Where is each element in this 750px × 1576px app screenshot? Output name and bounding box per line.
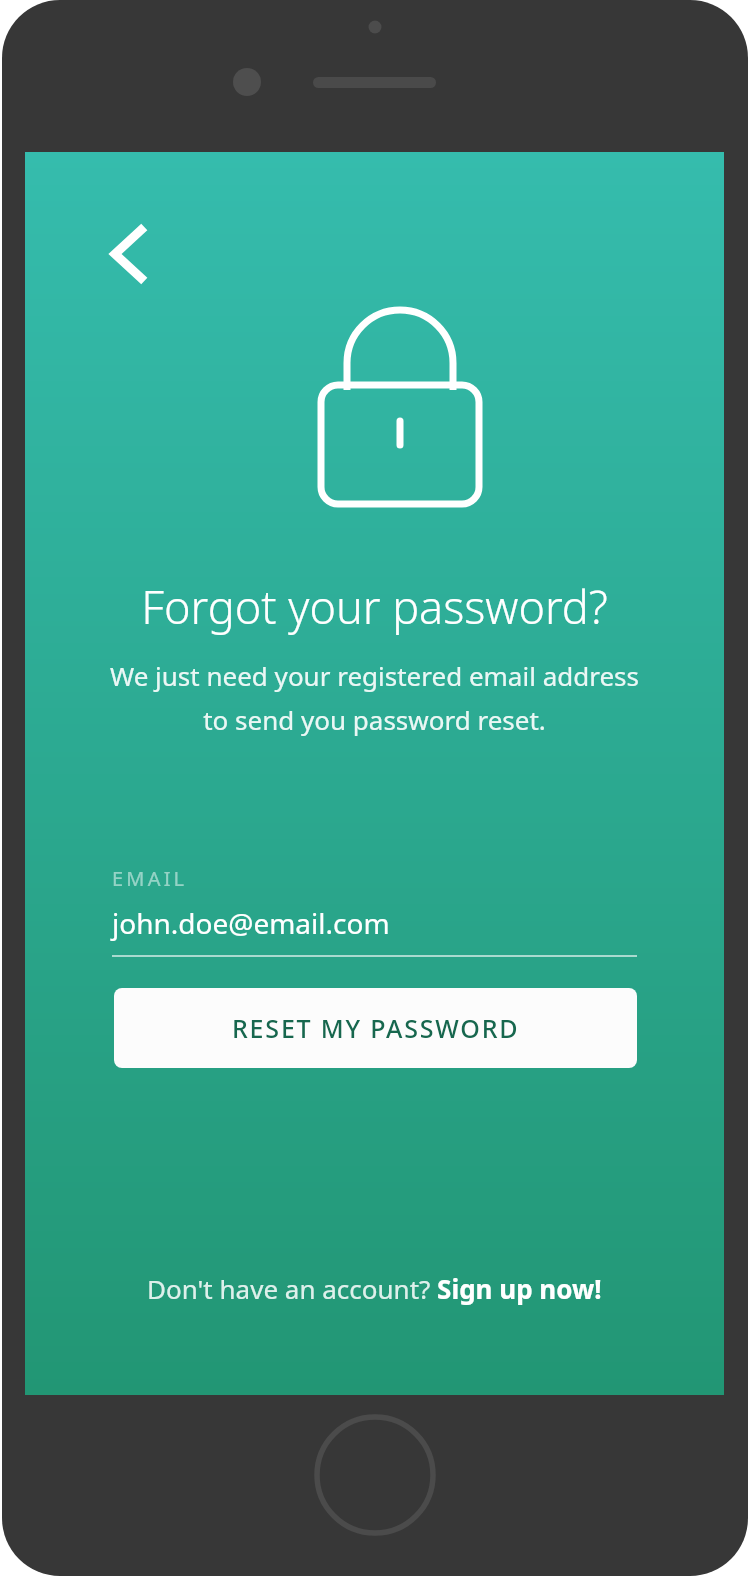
staticText: Don't have an account? Sign up now! <box>147 1271 602 1306</box>
staticText: We just need your registered email addre… <box>65 658 684 738</box>
button[interactable]: RESET MY PASSWORD <box>114 988 637 1068</box>
staticText: EMAIL <box>112 865 188 892</box>
staticText: john.doe@email.com <box>112 904 390 942</box>
staticText: Forgot your password? <box>25 576 724 637</box>
button[interactable]: Back <box>97 202 185 290</box>
button[interactable]: john.doe@email.com <box>112 897 637 957</box>
button[interactable]: Don't have an account? Sign up now! <box>25 1260 724 1316</box>
staticText: RESET MY PASSWORD <box>232 1011 520 1045</box>
